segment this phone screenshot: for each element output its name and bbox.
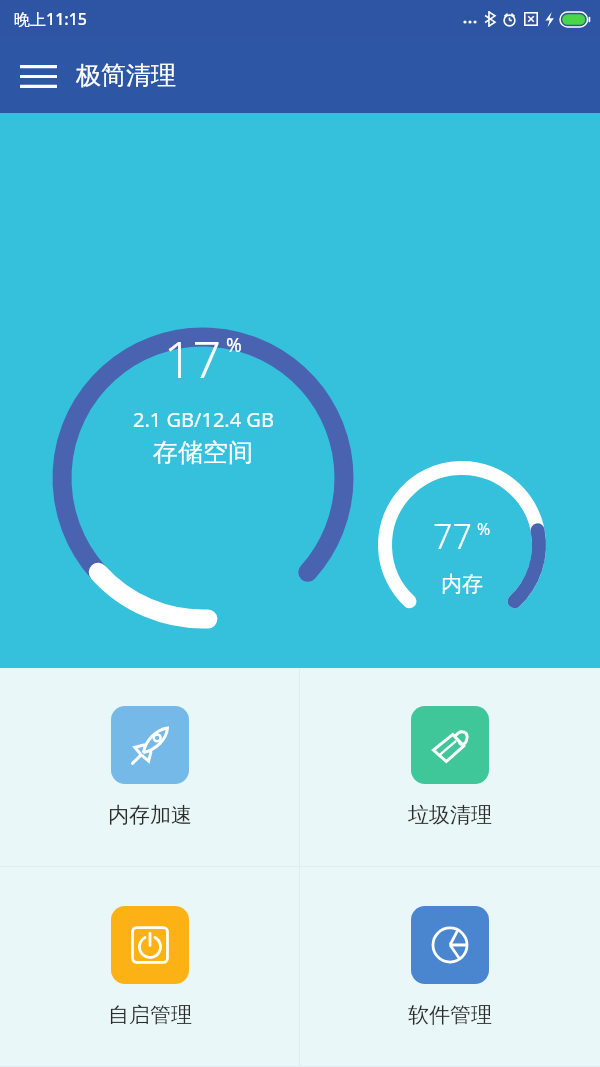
staticText: 自启管理 (108, 1002, 192, 1028)
staticText: % (477, 518, 491, 540)
staticText: % (226, 332, 242, 358)
button[interactable]: 软件管理 (300, 867, 600, 1066)
staticText: 晚上11:15 (14, 8, 87, 30)
staticText: 2.1 GB/12.4 GB (133, 406, 274, 433)
button[interactable]: 垃圾清理 (300, 668, 600, 866)
staticText: 内存加速 (108, 802, 192, 828)
staticText: 77 (433, 513, 472, 559)
staticText: 内存 (441, 571, 483, 597)
button[interactable]: 内存加速 (0, 668, 299, 866)
staticText: 垃圾清理 (408, 802, 492, 828)
staticText: 存储空间 (153, 437, 253, 468)
staticText: 17 (164, 325, 222, 393)
staticText: 极简清理 (76, 60, 176, 91)
button[interactable]: 自启管理 (0, 867, 299, 1066)
button[interactable]: Menu (10, 48, 66, 104)
staticText: 软件管理 (408, 1002, 492, 1028)
